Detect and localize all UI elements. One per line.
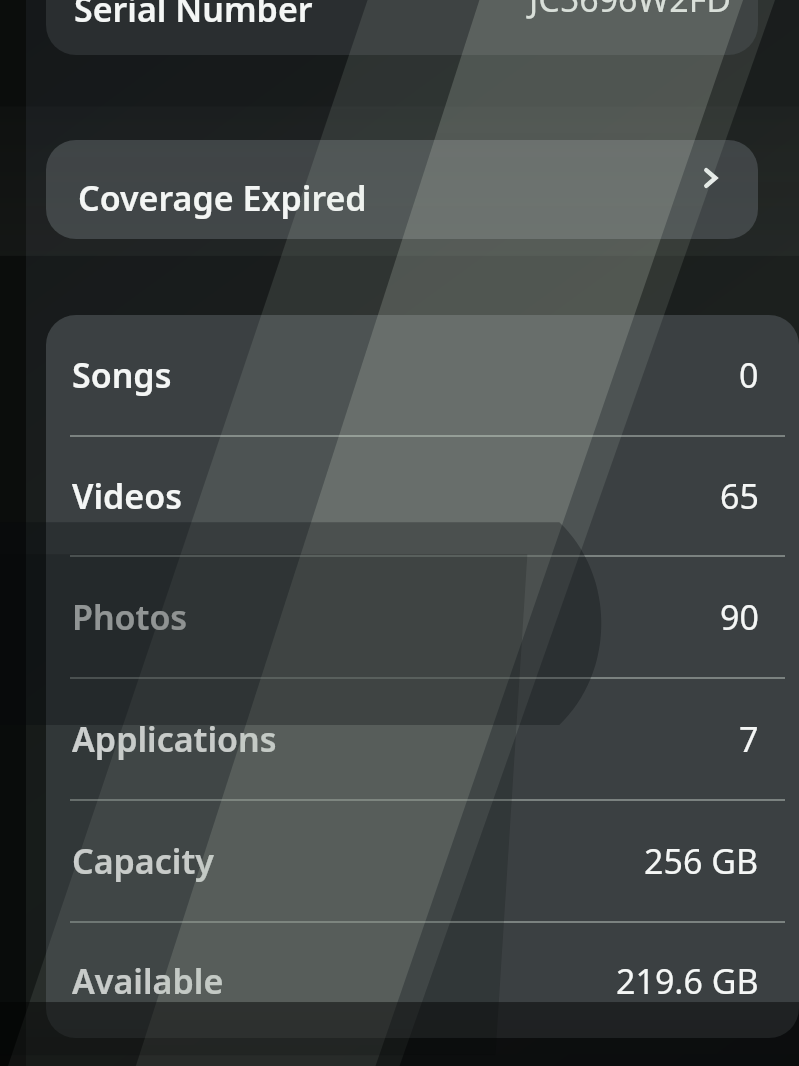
staticText: Serial Number xyxy=(74,0,313,32)
staticText: 90 xyxy=(720,594,759,640)
button[interactable]: Applications xyxy=(46,679,799,799)
staticText: 7 xyxy=(739,716,759,762)
staticText: Capacity xyxy=(72,838,214,884)
button[interactable]: Songs xyxy=(46,315,799,435)
staticText: Applications xyxy=(72,716,277,762)
staticText: 0 xyxy=(739,352,759,398)
button[interactable]: Capacity xyxy=(46,801,799,921)
staticText: JC5696W2FD xyxy=(529,0,732,22)
staticText: Songs xyxy=(72,352,172,398)
staticText: Coverage Expired xyxy=(78,175,367,221)
staticText: 256 GB xyxy=(644,838,759,884)
staticText: 65 xyxy=(720,473,759,519)
button[interactable]: Photos xyxy=(46,557,799,677)
staticText: 219.6 GB xyxy=(616,958,759,1004)
staticText: Available xyxy=(72,958,224,1004)
button[interactable]: Available xyxy=(46,923,799,1038)
button[interactable]: Coverage Expired xyxy=(46,140,758,239)
other: Coverage details xyxy=(694,161,728,195)
staticText: Videos xyxy=(72,473,182,519)
button[interactable]: Serial Number xyxy=(46,0,758,55)
staticText: Photos xyxy=(72,594,188,640)
button[interactable]: Videos xyxy=(46,437,799,555)
